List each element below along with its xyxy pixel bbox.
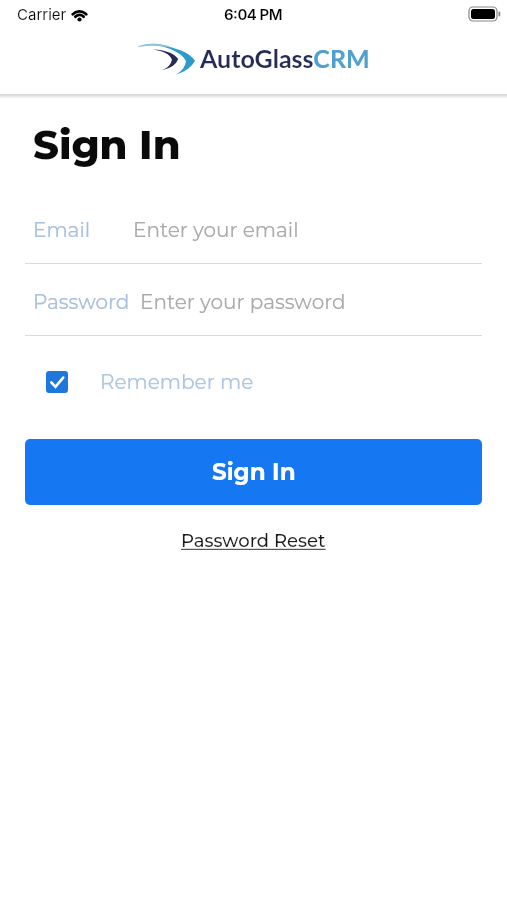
staticText: Enter your password <box>140 290 346 314</box>
staticText: 6:04 PM <box>224 5 283 23</box>
staticText: Password <box>33 290 130 314</box>
staticText: Enter your email <box>133 218 299 242</box>
button[interactable]: Sign In <box>25 439 482 505</box>
staticText: Sign In <box>212 458 296 486</box>
staticText: Email <box>33 218 91 242</box>
staticText: AutoGlassCRM <box>200 43 370 73</box>
staticText: Sign In <box>33 120 181 169</box>
button[interactable]: Password Reset <box>181 530 326 552</box>
button[interactable]: Remember me <box>46 370 254 394</box>
button[interactable]: Email <box>25 218 482 242</box>
staticText: Remember me <box>100 370 254 394</box>
staticText: Carrier <box>17 5 67 23</box>
button[interactable]: Password <box>25 290 482 314</box>
